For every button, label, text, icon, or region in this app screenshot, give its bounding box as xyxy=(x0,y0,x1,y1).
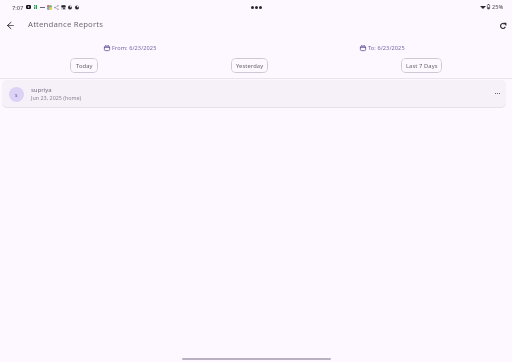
staticText: 7:07 xyxy=(12,4,24,12)
staticText: From: 6/23/2025 xyxy=(112,44,157,52)
button[interactable]: To: 6/23/2025 xyxy=(358,43,407,53)
staticText: Jun 23, 2025 (home) xyxy=(31,94,82,101)
staticText: s xyxy=(15,91,18,98)
staticText: To: 6/23/2025 xyxy=(368,44,405,52)
staticText: Last 7 Days xyxy=(406,62,438,70)
staticText: supriya xyxy=(31,86,52,94)
button[interactable]: Refresh xyxy=(495,18,511,34)
staticText: 25% xyxy=(492,3,504,11)
staticText: Attendance Reports xyxy=(28,19,104,30)
button[interactable]: Yesterday xyxy=(231,58,268,73)
button[interactable]: Today xyxy=(70,58,98,73)
button[interactable]: s xyxy=(2,80,506,107)
staticText: Today xyxy=(76,62,93,70)
staticText: Yesterday xyxy=(236,62,264,70)
button[interactable]: Back xyxy=(2,17,18,33)
button[interactable]: Last 7 Days xyxy=(401,58,442,73)
button[interactable]: From: 6/23/2025 xyxy=(102,43,159,53)
